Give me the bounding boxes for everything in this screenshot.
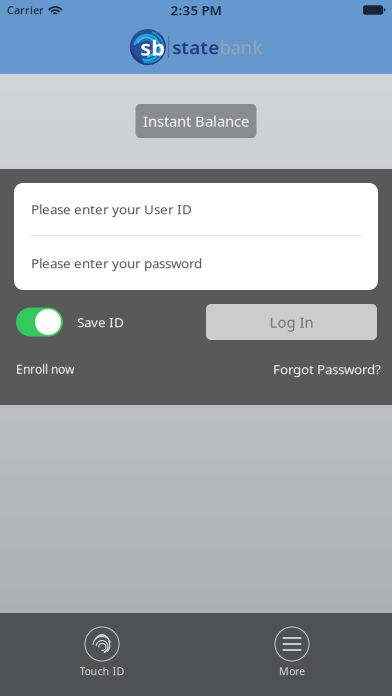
button[interactable]: Instant Balance: [135, 104, 256, 138]
staticText: Please enter your password: [31, 254, 202, 272]
staticText: Forgot Password?: [273, 360, 381, 378]
staticText: state: [172, 35, 219, 59]
button[interactable]: Touch ID: [57, 613, 147, 696]
staticText: Carrier: [7, 3, 44, 17]
staticText: More: [279, 664, 305, 678]
staticText: Please enter your User ID: [31, 200, 192, 218]
button[interactable]: Save ID: [16, 304, 124, 340]
staticText: Touch ID: [79, 664, 124, 678]
staticText: Save ID: [77, 313, 124, 331]
button[interactable]: Forgot Password?: [273, 360, 381, 378]
staticText: Log In: [269, 312, 313, 332]
staticText: bank: [219, 35, 262, 59]
staticText: 2:35 PM: [170, 1, 221, 19]
staticText: Enroll now: [16, 361, 74, 377]
button[interactable]: Enroll now: [16, 361, 74, 377]
button[interactable]: More: [247, 613, 337, 696]
staticText: sb: [140, 33, 164, 62]
button[interactable]: Log In: [206, 304, 377, 340]
staticText: Instant Balance: [143, 111, 249, 131]
